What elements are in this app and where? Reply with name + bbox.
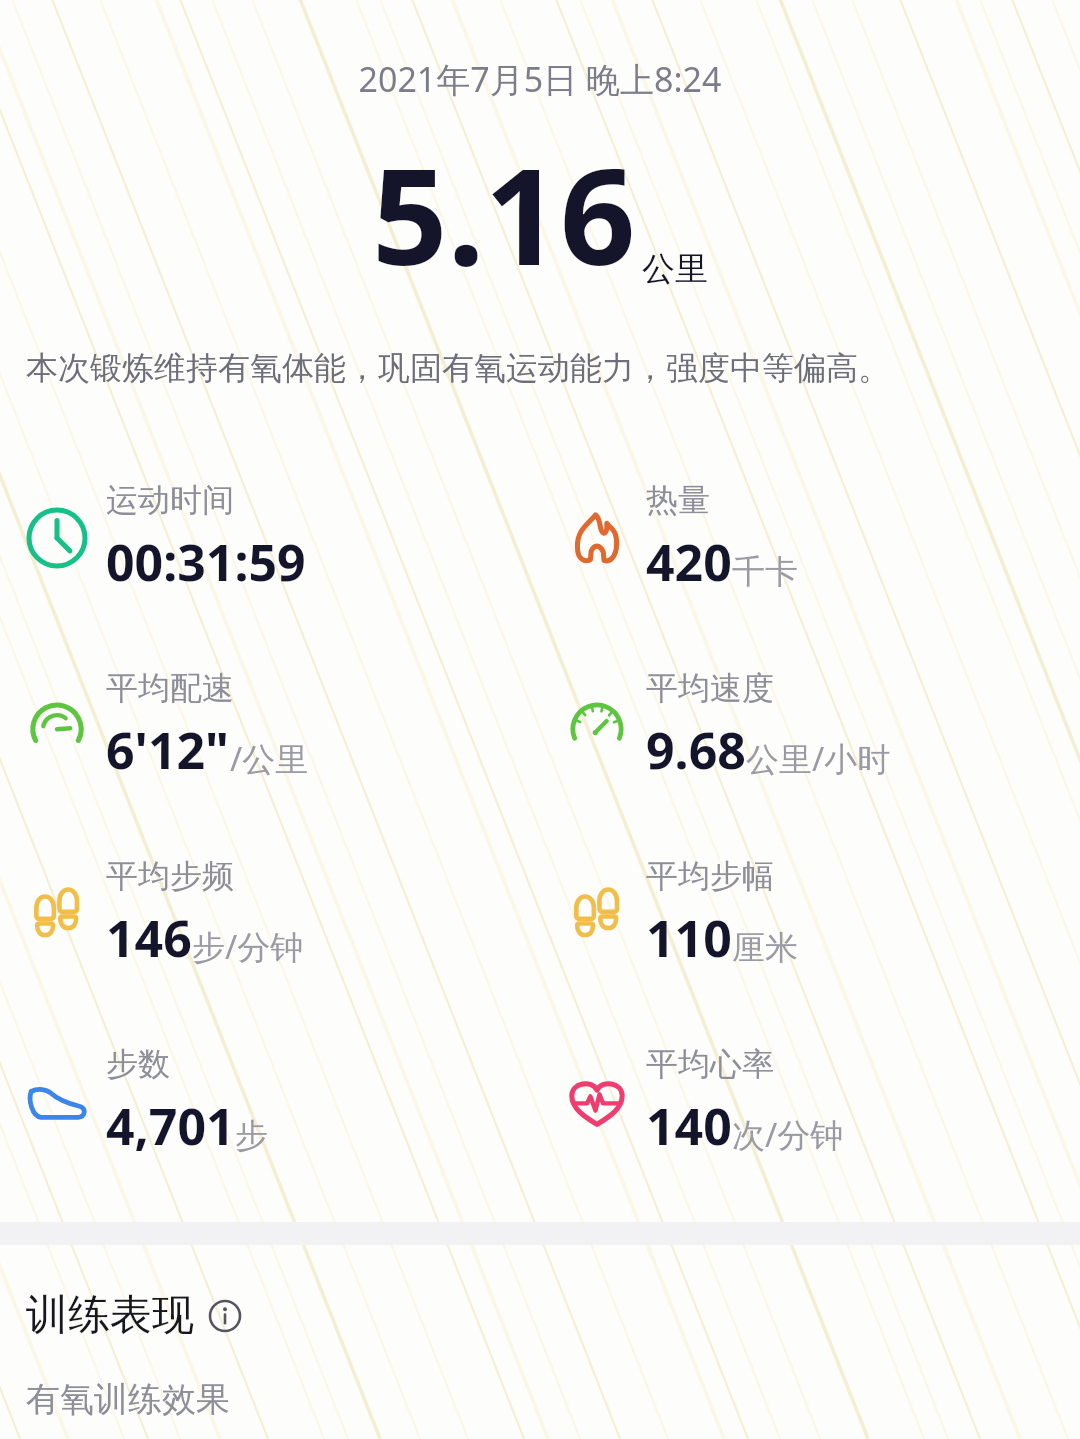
staticText: 厘米 xyxy=(732,927,798,969)
button[interactable]: 平均配速 xyxy=(0,632,540,820)
button[interactable]: 平均步频 xyxy=(0,820,540,1008)
staticText: 步/分钟 xyxy=(192,924,304,969)
button[interactable]: 步数 xyxy=(0,1008,540,1196)
staticText: 次/分钟 xyxy=(732,1112,844,1157)
staticText: 运动时间 xyxy=(106,480,234,520)
staticText: 9.68 xyxy=(646,716,746,784)
staticText: 5.16 xyxy=(372,124,636,304)
staticText: 4,701 xyxy=(106,1092,235,1160)
other: Info xyxy=(208,1299,242,1333)
staticText: 140 xyxy=(646,1092,732,1160)
staticText: 步 xyxy=(235,1115,268,1157)
staticText: 平均速度 xyxy=(646,668,774,708)
button[interactable]: 平均步幅 xyxy=(540,820,1080,1008)
staticText: 平均配速 xyxy=(106,668,234,708)
button[interactable]: 训练表现 xyxy=(0,1289,1080,1342)
staticText: 平均心率 xyxy=(646,1044,774,1084)
staticText: 热量 xyxy=(646,480,710,520)
staticText: 公里 xyxy=(642,248,708,290)
staticText: 有氧训练效果 xyxy=(26,1378,230,1421)
staticText: /公里 xyxy=(230,736,309,781)
staticText: 110 xyxy=(646,904,732,972)
button[interactable]: 运动时间 xyxy=(0,444,540,632)
staticText: 平均步幅 xyxy=(646,856,774,896)
staticText: 训练表现 xyxy=(26,1289,194,1342)
staticText: 平均步频 xyxy=(106,856,234,896)
staticText: 420 xyxy=(646,528,732,596)
staticText: 2021年7月5日 晚上8:24 xyxy=(0,56,1080,102)
staticText: 146 xyxy=(106,904,192,972)
staticText: 本次锻炼维持有氧体能，巩固有氧运动能力，强度中等偏高。 xyxy=(26,348,1054,388)
staticText: 千卡 xyxy=(732,551,798,593)
staticText: 6'12" xyxy=(106,716,230,784)
staticText: 公里/小时 xyxy=(746,736,891,781)
button[interactable]: 平均心率 xyxy=(540,1008,1080,1196)
staticText: 步数 xyxy=(106,1044,170,1084)
button[interactable]: 热量 xyxy=(540,444,1080,632)
staticText: 00:31:59 xyxy=(106,528,306,596)
button[interactable]: 平均速度 xyxy=(540,632,1080,820)
